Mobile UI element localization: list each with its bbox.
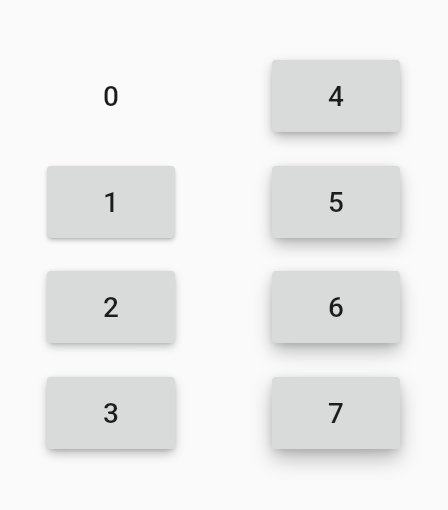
button[interactable]: 7	[272, 377, 400, 449]
staticText: 5	[328, 186, 344, 219]
button[interactable]: 5	[272, 166, 400, 238]
button[interactable]: 2	[47, 271, 175, 343]
button[interactable]: 4	[272, 60, 400, 132]
button[interactable]: 6	[272, 271, 400, 343]
staticText: 4	[328, 80, 344, 113]
staticText: 1	[103, 186, 119, 219]
button[interactable]: 1	[47, 166, 175, 238]
staticText: 6	[328, 291, 344, 324]
staticText: 7	[328, 397, 344, 430]
staticText: 3	[103, 397, 119, 430]
button[interactable]: 0	[47, 60, 175, 132]
staticText: 0	[103, 80, 119, 113]
staticText: 2	[103, 291, 119, 324]
button[interactable]: 3	[47, 377, 175, 449]
